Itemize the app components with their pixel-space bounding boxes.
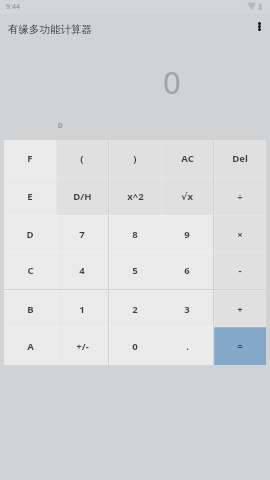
staticText: C [27,264,34,277]
button[interactable]: . [161,327,213,365]
staticText: x^2 [127,190,144,203]
button[interactable]: E [4,177,56,215]
button[interactable]: F [4,140,56,177]
staticText: 0 [163,61,181,103]
button[interactable]: D/H [56,177,108,215]
staticText: 2 [132,303,138,316]
staticText: Del [232,152,248,165]
button[interactable]: 4 [56,252,108,289]
staticText: × [237,228,243,241]
button[interactable]: = [214,327,266,365]
staticText: + [237,303,243,316]
staticText: D/H [73,190,92,203]
button[interactable]: 0 [109,327,161,365]
staticText: - [238,264,242,277]
button[interactable]: x^2 [109,177,161,215]
button[interactable]: √x [161,177,213,215]
staticText: ÷ [237,190,243,203]
staticText: 8 [132,228,138,241]
button[interactable]: AC [161,140,213,177]
button[interactable]: 3 [161,290,213,328]
staticText: 9:44 [6,2,20,12]
button[interactable]: ) [109,140,161,177]
staticText: 3 [184,303,190,316]
staticText: B [27,303,34,316]
button[interactable]: D [4,215,56,253]
staticText: 1 [79,303,85,316]
button[interactable]: 6 [161,252,213,289]
button[interactable]: B [4,290,56,328]
staticText: 6 [184,264,190,277]
staticText: 有缘多功能计算器 [8,23,92,36]
button[interactable]: - [214,252,266,289]
staticText: 7 [79,228,85,241]
staticText: D [58,121,63,130]
staticText: AC [181,152,194,165]
button[interactable]: Del [214,140,266,177]
staticText: D [26,228,34,241]
button[interactable]: More options [247,14,270,38]
button[interactable]: +/- [56,327,108,365]
staticText: √x [181,190,193,203]
staticText: 9 [184,228,190,241]
staticText: +/- [76,340,89,353]
staticText: = [237,340,243,353]
staticText: 5 [132,264,138,277]
button[interactable]: A [4,327,56,365]
staticText: ( [80,152,84,165]
button[interactable]: 8 [109,215,161,253]
button[interactable]: 5 [109,252,161,289]
button[interactable]: 1 [56,290,108,328]
button[interactable]: 9 [161,215,213,253]
button[interactable]: 2 [109,290,161,328]
staticText: 0 [132,340,138,353]
button[interactable]: ( [56,140,108,177]
staticText: ) [133,152,137,165]
button[interactable]: + [214,290,266,328]
staticText: E [27,190,33,203]
staticText: A [27,340,34,353]
staticText: 4 [79,264,85,277]
staticText: . [186,340,189,353]
button[interactable]: C [4,252,56,289]
button[interactable]: ÷ [214,177,266,215]
button[interactable]: 7 [56,215,108,253]
staticText: F [27,152,33,165]
button[interactable]: × [214,215,266,253]
